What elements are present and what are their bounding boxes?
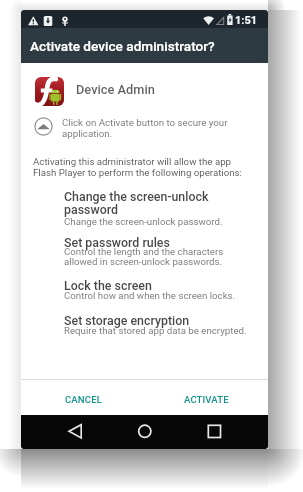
staticText: Change the screen-unlock password.	[64, 216, 223, 227]
staticText: Lock the screen	[64, 278, 152, 293]
staticText: Set password rules	[64, 235, 170, 250]
staticText: allowed in screen-unlock passwords.	[64, 256, 223, 267]
staticText: CANCEL	[65, 394, 102, 405]
staticText: Set storage encryption	[64, 313, 190, 328]
staticText: Change the screen-unlock	[64, 189, 209, 204]
staticText: 1:51	[235, 14, 258, 27]
staticText: Click on Activate button to secure your	[62, 117, 228, 128]
staticText: Flash Player to perform the following op…	[33, 167, 242, 178]
staticText: Control how and when the screen locks.	[64, 290, 236, 301]
staticText: Activating this administrator will allow…	[33, 156, 232, 167]
staticText: ACTIVATE	[184, 394, 229, 405]
staticText: Control the length and the characters	[64, 246, 224, 257]
staticText: Activate device administrator?	[30, 38, 215, 54]
staticText: Device Admin	[76, 82, 155, 97]
staticText: application.	[62, 128, 113, 139]
staticText: Require that stored app data be encrypte…	[64, 325, 247, 336]
staticText: password	[64, 202, 118, 217]
